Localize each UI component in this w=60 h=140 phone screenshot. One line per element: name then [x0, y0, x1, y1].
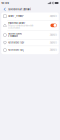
button[interactable]: Sledování spánku v hodinkách — [1, 31, 59, 39]
staticText: Automatické tepy — [8, 41, 24, 44]
staticText: Do upozornění budou přidány další zvuky … — [8, 25, 33, 29]
button[interactable]: Automatické tepy — [1, 40, 59, 46]
staticText: Zapnuto — [50, 49, 57, 51]
staticText: Automatické SpO₂ — [8, 49, 24, 51]
staticText: Sledování spánku v hodinkách — [8, 33, 22, 37]
staticText: Sledovat zdraví — [8, 8, 31, 11]
staticText: Zapnuto — [50, 15, 57, 17]
button[interactable]: Back — [3, 6, 7, 12]
staticText: Připomenutí aktivity — [8, 22, 25, 24]
staticText: 10:09 — [1, 1, 9, 5]
staticText: Zapnuto — [50, 42, 57, 44]
button[interactable]: Aktivity „Tréninky“ — [1, 12, 59, 20]
staticText: Zapnuto — [50, 34, 57, 36]
button[interactable]: Připomenutí aktivity — [50, 24, 57, 27]
button[interactable]: Automatické SpO₂ — [1, 46, 59, 54]
staticText: Aktivity „Tréninky“ — [8, 15, 24, 17]
